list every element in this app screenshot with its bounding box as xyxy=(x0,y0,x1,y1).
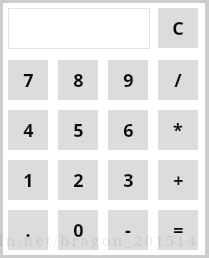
staticText: 4 xyxy=(23,118,34,143)
button[interactable]: Equals xyxy=(158,210,198,250)
staticText: 6 xyxy=(123,118,134,143)
button[interactable]: 3 xyxy=(108,160,148,200)
staticText: + xyxy=(173,168,184,193)
button[interactable]: 8 xyxy=(58,60,98,100)
button[interactable]: 7 xyxy=(8,60,48,100)
button[interactable]: 1 xyxy=(8,160,48,200)
staticText: / xyxy=(174,68,182,93)
staticText: - xyxy=(125,218,131,243)
button[interactable]: Decimal point xyxy=(8,210,48,250)
staticText: 9 xyxy=(123,68,134,93)
staticText: 3 xyxy=(123,168,134,193)
button[interactable]: 2 xyxy=(58,160,98,200)
button[interactable]: 0 xyxy=(58,210,98,250)
staticText: 2 xyxy=(73,168,84,193)
staticText: * xyxy=(173,118,183,143)
button[interactable]: Plus xyxy=(158,160,198,200)
button[interactable]: Clear xyxy=(158,8,198,48)
button[interactable]: Divide xyxy=(158,60,198,100)
button[interactable]: 9 xyxy=(108,60,148,100)
staticText: 8 xyxy=(73,68,84,93)
button[interactable]: 4 xyxy=(8,110,48,150)
button[interactable]: Minus xyxy=(108,210,148,250)
staticText: 5 xyxy=(73,118,84,143)
staticText: . xyxy=(25,218,31,243)
button[interactable]: 6 xyxy=(108,110,148,150)
button[interactable]: Multiply xyxy=(158,110,198,150)
staticText: 0 xyxy=(73,218,84,243)
button[interactable]: 5 xyxy=(58,110,98,150)
staticText: dn.net/bragon_201514 xyxy=(0,230,198,250)
button[interactable]: Display xyxy=(8,8,150,49)
staticText: = xyxy=(173,218,184,243)
staticText: C xyxy=(172,16,184,41)
staticText: 1 xyxy=(23,168,34,193)
staticText: 7 xyxy=(23,68,34,93)
